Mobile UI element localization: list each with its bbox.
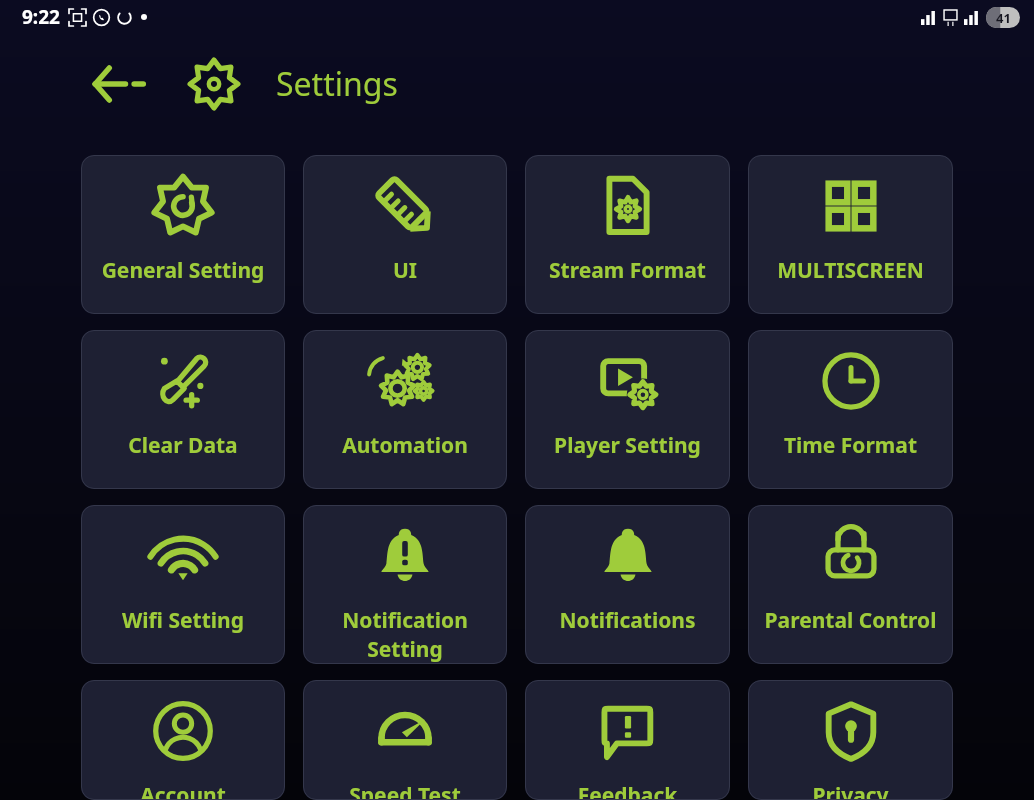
button[interactable]: Time Format — [748, 330, 953, 489]
staticText: Parental Control — [748, 606, 953, 635]
button[interactable]: UI — [303, 155, 507, 314]
staticText: General Setting — [81, 256, 285, 285]
staticText: UI — [303, 256, 507, 285]
button[interactable]: Feedback — [525, 680, 730, 800]
staticText: Feedback — [525, 781, 730, 800]
button[interactable]: General Setting — [81, 155, 285, 314]
staticText: Time Format — [748, 431, 953, 460]
button[interactable]: Speed Test — [303, 680, 507, 800]
button[interactable]: Back — [88, 53, 150, 115]
staticText: Player Setting — [525, 431, 730, 460]
button[interactable]: Account — [81, 680, 285, 800]
button[interactable]: Privacy — [748, 680, 953, 800]
staticText: Privacy — [748, 781, 953, 800]
staticText: Account — [81, 781, 285, 800]
staticText: Speed Test — [303, 781, 507, 800]
button[interactable]: Notification Setting — [303, 505, 507, 664]
staticText: 41 — [996, 9, 1011, 27]
button[interactable]: Stream Format — [525, 155, 730, 314]
button[interactable]: Notifications — [525, 505, 730, 664]
staticText: Notifications — [525, 606, 730, 635]
staticText: Notification Setting — [303, 606, 507, 664]
button[interactable]: Wifi Setting — [81, 505, 285, 664]
staticText: Wifi Setting — [81, 606, 285, 635]
button[interactable]: Parental Control — [748, 505, 953, 664]
staticText: Clear Data — [81, 431, 285, 460]
button[interactable]: MULTISCREEN — [748, 155, 953, 314]
staticText: Stream Format — [525, 256, 730, 285]
button[interactable]: Player Setting — [525, 330, 730, 489]
button[interactable]: Clear Data — [81, 330, 285, 489]
staticText: 9:22 — [22, 4, 60, 30]
staticText: MULTISCREEN — [748, 256, 953, 285]
staticText: Automation — [303, 431, 507, 460]
button[interactable]: Automation — [303, 330, 507, 489]
staticText: Settings — [276, 62, 398, 106]
